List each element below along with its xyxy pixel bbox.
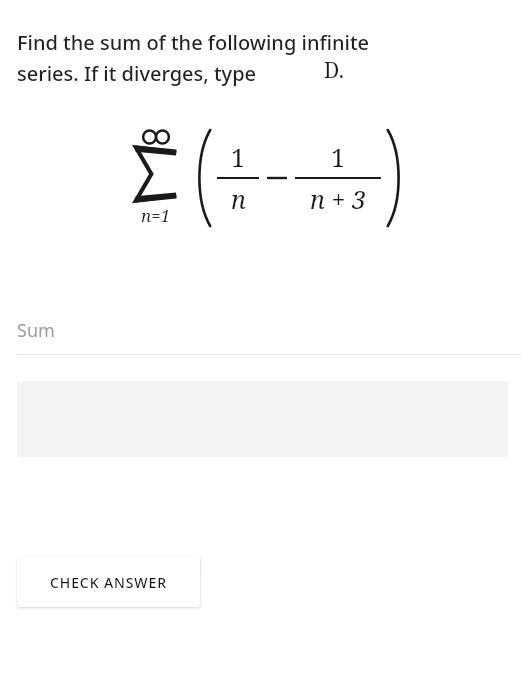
button[interactable]: CHECK ANSWER (17, 557, 200, 607)
staticText: n (231, 182, 246, 216)
staticText: Sum (17, 318, 55, 343)
staticText: 1 (331, 140, 345, 174)
staticText: D. (324, 56, 345, 85)
staticText: 1 (231, 140, 245, 174)
staticText: Find the sum of the following infinite s… (17, 29, 370, 86)
staticText: CHECK ANSWER (50, 573, 167, 592)
button[interactable]: Sum (17, 318, 521, 355)
staticText: n=1 (141, 204, 171, 227)
staticText: n + 3 (310, 182, 366, 216)
